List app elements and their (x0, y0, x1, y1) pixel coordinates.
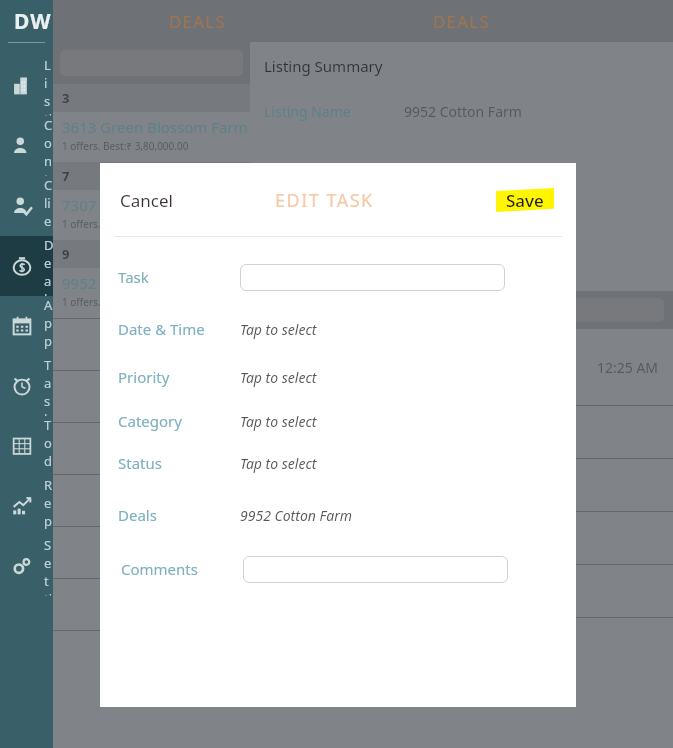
staticText: Reports (44, 476, 53, 536)
staticText: 1 offers. Best:₹ 2,50,000.00 (62, 295, 189, 309)
staticText: Listing Name (264, 102, 404, 121)
staticText: Status (118, 453, 240, 473)
staticText: 3613 Green Blossom Farm (62, 117, 248, 137)
button[interactable]: Category (100, 401, 576, 441)
staticText: Priority (118, 367, 240, 387)
button[interactable]: 9952 Cotton Farm (53, 268, 250, 318)
button[interactable]: Settings (0, 536, 53, 596)
staticText: Category (118, 411, 240, 431)
button[interactable]: 7307 Daisy Farm (53, 190, 250, 240)
staticText: 9952 Cotton Farm (62, 273, 189, 293)
button[interactable]: Contacts (0, 116, 53, 176)
button[interactable]: Date & Time (100, 305, 576, 353)
staticText: Cancel (120, 189, 173, 212)
button[interactable]: Priority (100, 353, 576, 401)
button[interactable]: Todo (0, 416, 53, 476)
button[interactable]: Deals (100, 493, 576, 537)
button[interactable]: Comments (100, 547, 576, 591)
staticText: 9952 Cotton Farm (404, 102, 522, 121)
staticText: Deals (44, 236, 53, 296)
staticText: DEALS (433, 10, 490, 33)
staticText: DEALS (169, 10, 226, 33)
staticText: Tasks (44, 356, 53, 416)
button[interactable] (53, 526, 250, 578)
staticText: 7 (62, 167, 70, 185)
button[interactable]: Clients (0, 176, 53, 236)
staticText: 9 (62, 245, 70, 263)
staticText: 3 (62, 89, 70, 107)
staticText: Comments (121, 559, 243, 579)
button[interactable]: Search deals (259, 298, 664, 322)
staticText: Tap to select (240, 320, 317, 339)
button[interactable] (250, 458, 673, 511)
staticText: Date & Time (118, 319, 240, 339)
staticText: DW (14, 7, 52, 36)
staticText: Listing Summary (264, 56, 383, 76)
button[interactable] (53, 370, 250, 422)
staticText: Todo (44, 416, 53, 476)
staticText: Contacts (44, 116, 53, 176)
staticText: 1 offers. Best:₹ 3,80,000.00 (62, 139, 189, 153)
staticText: Tap to select (240, 368, 317, 387)
staticText: Appointments (44, 296, 53, 356)
button[interactable] (53, 630, 250, 682)
button[interactable]: Listings (0, 56, 53, 116)
button[interactable]: Appointments (0, 296, 53, 356)
button[interactable] (250, 564, 673, 617)
staticText: 1 offers. Best:₹ 1,20,000.00 (62, 217, 189, 231)
staticText: EDIT TASK (275, 188, 374, 213)
button[interactable] (250, 511, 673, 564)
button[interactable] (250, 405, 673, 458)
staticText: Save (506, 189, 544, 212)
staticText: Deals (118, 505, 240, 525)
button[interactable] (53, 474, 250, 526)
button[interactable]: Status (100, 441, 576, 485)
button[interactable]: Save (496, 188, 554, 212)
button[interactable]: Reports (0, 476, 53, 536)
staticText: 7307 Daisy Farm (62, 195, 179, 215)
staticText: Clients (44, 176, 53, 236)
staticText: Tap to select (240, 454, 317, 473)
button[interactable]: Deals (0, 236, 53, 296)
button[interactable]: Task (100, 253, 576, 301)
button[interactable]: Cancel (108, 181, 185, 220)
staticText: 12:25 AM (597, 358, 659, 377)
button[interactable]: Tasks (0, 356, 53, 416)
button[interactable] (53, 578, 250, 630)
button[interactable] (53, 318, 250, 370)
staticText: Settings (44, 536, 53, 596)
staticText: Task (118, 267, 240, 287)
staticText: 9952 Cotton Farm (240, 506, 352, 525)
button[interactable] (53, 422, 250, 474)
staticText: Listings (44, 56, 53, 116)
button[interactable]: 3613 Green Blossom Farm (53, 112, 250, 162)
button[interactable]: 12:25 AM (250, 329, 673, 405)
staticText: Tap to select (240, 412, 317, 431)
